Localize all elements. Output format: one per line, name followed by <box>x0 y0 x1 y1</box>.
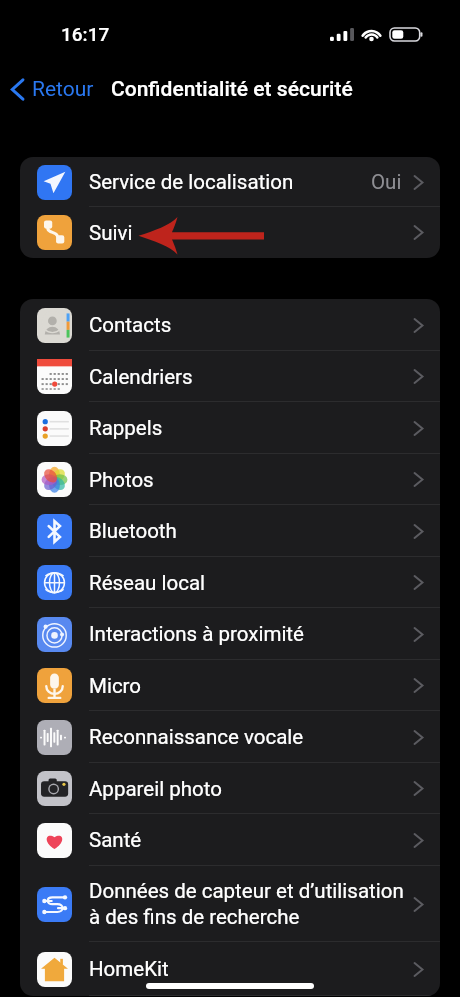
button[interactable]: Contacts <box>20 299 440 351</box>
staticText: Reconnaissance vocale <box>89 725 304 749</box>
staticText: Calendriers <box>89 365 193 389</box>
staticText: Micro <box>89 674 142 698</box>
button[interactable]: Appareil photo <box>20 763 440 814</box>
button[interactable]: Interactions à proximité <box>20 608 440 660</box>
button[interactable]: Bluetooth <box>20 505 440 557</box>
button[interactable]: Réseau local <box>20 557 440 608</box>
staticText: Rappels <box>89 416 163 440</box>
staticText: Photos <box>89 468 154 492</box>
staticText: 16:17 <box>61 23 110 45</box>
staticText: Suivi <box>89 221 133 245</box>
staticText: Bluetooth <box>89 519 177 543</box>
button[interactable]: HomeKit <box>20 942 440 996</box>
staticText: Service de localisation <box>89 170 294 194</box>
staticText: Contacts <box>89 313 172 337</box>
button[interactable]: Photos <box>20 454 440 505</box>
staticText: Oui <box>371 170 402 194</box>
button[interactable]: Suivi <box>20 207 440 258</box>
button[interactable]: Micro <box>20 660 440 711</box>
button[interactable]: Rappels <box>20 402 440 454</box>
button[interactable]: Données de capteur et d’utilisation à de… <box>20 866 440 942</box>
button[interactable]: Santé <box>20 814 440 866</box>
staticText: Retour <box>32 77 94 102</box>
staticText: Santé <box>89 828 142 852</box>
button[interactable]: Service de localisation <box>20 157 440 207</box>
button[interactable]: Retour <box>6 73 98 106</box>
button[interactable]: Reconnaissance vocale <box>20 711 440 763</box>
staticText: Appareil photo <box>89 777 222 801</box>
staticText: Interactions à proximité <box>89 622 304 646</box>
staticText: HomeKit <box>89 957 169 981</box>
staticText: Confidentialité et sécurité <box>111 77 353 102</box>
staticText: Réseau local <box>89 571 206 595</box>
button[interactable]: Calendriers <box>20 351 440 402</box>
staticText: Données de capteur et d’utilisation à de… <box>89 879 404 929</box>
